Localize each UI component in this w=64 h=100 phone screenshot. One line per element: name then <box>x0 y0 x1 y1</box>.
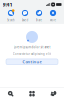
button[interactable]: Share <box>32 9 46 22</box>
button[interactable]: More <box>46 9 60 22</box>
staticText: Continue <box>22 59 41 64</box>
staticText: Saved <box>21 18 28 22</box>
button[interactable]: Search <box>4 9 18 22</box>
staticText: Search <box>7 18 15 22</box>
staticText: More <box>49 18 56 22</box>
staticText: 9:41 <box>2 1 12 8</box>
staticText: Share <box>35 18 42 22</box>
staticText: Consectetur adipiscing elit <box>13 52 51 56</box>
button[interactable]: Continue <box>6 59 58 64</box>
staticText: Lorem ipsum dolor sit amet <box>13 45 50 49</box>
button[interactable]: Explore <box>0 87 21 100</box>
button[interactable]: Saved <box>18 9 32 22</box>
button[interactable]: You <box>43 87 64 100</box>
button[interactable]: Saved <box>21 87 43 100</box>
